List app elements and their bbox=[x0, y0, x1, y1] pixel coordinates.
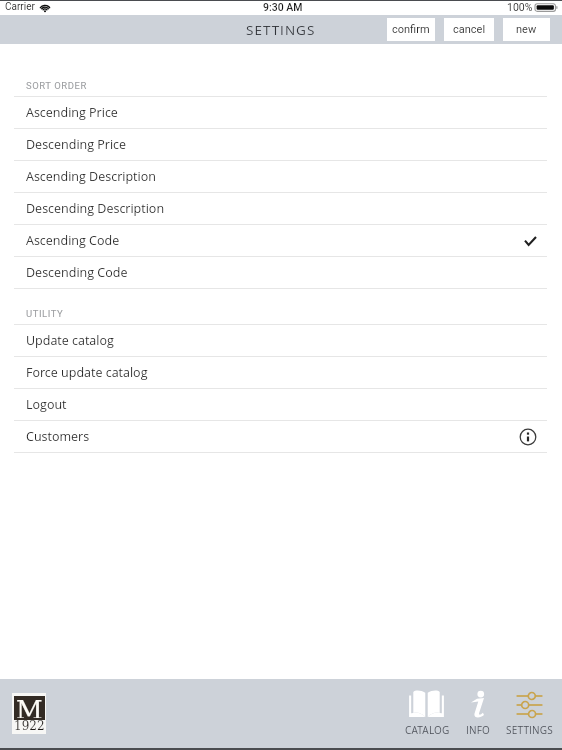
staticText: Descending Price bbox=[26, 136, 127, 153]
staticText: SETTINGS bbox=[246, 21, 316, 39]
button[interactable]: Descending Description bbox=[0, 193, 562, 224]
button[interactable]: Descending Price bbox=[0, 129, 562, 160]
staticText: new bbox=[516, 23, 537, 36]
button[interactable]: new bbox=[503, 18, 550, 41]
staticText: UTILITY bbox=[26, 308, 64, 319]
staticText: Customers bbox=[26, 428, 90, 445]
button[interactable]: Catalog bbox=[402, 689, 453, 739]
button[interactable]: Force update catalog bbox=[0, 357, 562, 388]
staticText: Descending Description bbox=[26, 200, 165, 217]
button[interactable]: Customers bbox=[0, 421, 562, 452]
button[interactable]: confirm bbox=[387, 18, 435, 41]
staticText: confirm bbox=[392, 23, 430, 36]
staticText: Ascending Code bbox=[26, 232, 120, 249]
button[interactable]: Ascending Description bbox=[0, 161, 562, 192]
button[interactable]: cancel bbox=[444, 18, 494, 41]
staticText: cancel bbox=[453, 23, 486, 36]
button[interactable]: Info bbox=[453, 689, 504, 739]
staticText: Force update catalog bbox=[26, 364, 148, 381]
button[interactable]: Update catalog bbox=[0, 325, 562, 356]
staticText: CATALOG bbox=[405, 723, 450, 737]
staticText: SORT ORDER bbox=[26, 80, 87, 91]
button[interactable]: Descending Code bbox=[0, 257, 562, 288]
staticText: Logout bbox=[26, 396, 67, 413]
staticText: Update catalog bbox=[26, 332, 114, 349]
staticText: SETTINGS bbox=[506, 723, 554, 737]
button[interactable]: Settings bbox=[504, 689, 555, 739]
staticText: 9:30 AM bbox=[263, 1, 303, 13]
button[interactable]: Ascending Code bbox=[0, 225, 562, 256]
button[interactable]: Ascending Price bbox=[0, 97, 562, 128]
staticText: Descending Code bbox=[26, 264, 128, 281]
button[interactable]: Brand logo bbox=[12, 693, 46, 734]
staticText: 1922 bbox=[14, 719, 45, 733]
staticText: Ascending Description bbox=[26, 168, 156, 185]
staticText: Carrier bbox=[5, 1, 35, 13]
staticText: Ascending Price bbox=[26, 104, 118, 121]
staticText: M bbox=[16, 695, 43, 718]
button[interactable]: Logout bbox=[0, 389, 562, 420]
staticText: INFO bbox=[466, 723, 491, 737]
staticText: 100% bbox=[507, 1, 533, 13]
